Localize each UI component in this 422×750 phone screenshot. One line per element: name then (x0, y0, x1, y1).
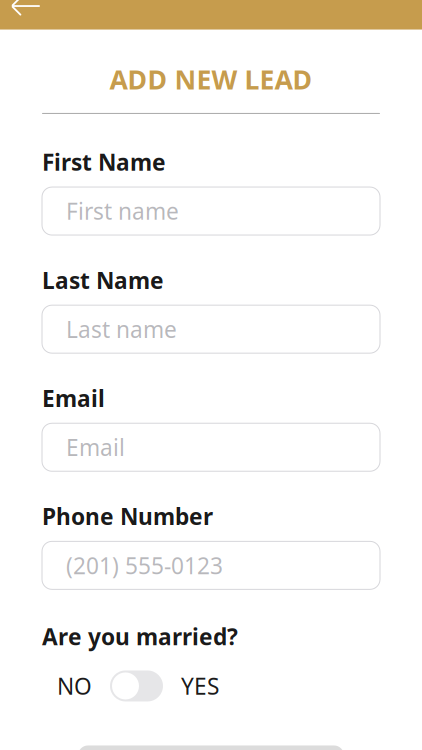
button[interactable]: First name (42, 187, 380, 235)
button[interactable]: Married toggle, off (110, 670, 163, 701)
button[interactable]: Last name (42, 305, 380, 353)
button[interactable]: Back (0, 0, 52, 28)
staticText: ADD NEW LEAD (109, 61, 312, 97)
staticText: NO (57, 671, 92, 701)
staticText: Email (42, 383, 105, 413)
button[interactable]: Submit (0, 745, 422, 750)
staticText: (201) 555-0123 (66, 550, 223, 580)
staticText: First name (66, 196, 179, 226)
button[interactable]: Email (42, 423, 380, 471)
staticText: Last Name (42, 265, 164, 295)
staticText: Are you married? (42, 621, 238, 651)
button[interactable]: (201) 555-0123 (42, 541, 380, 589)
staticText: YES (181, 671, 219, 701)
staticText: Email (66, 432, 125, 462)
staticText: First Name (42, 147, 166, 177)
staticText: Phone Number (42, 501, 213, 531)
staticText: Last name (66, 314, 177, 344)
